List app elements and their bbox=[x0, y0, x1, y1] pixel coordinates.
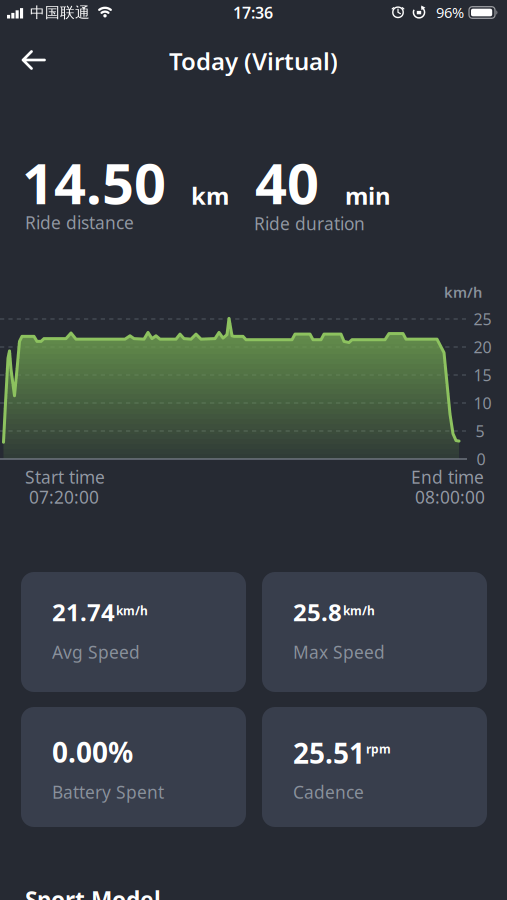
staticText: km bbox=[191, 180, 229, 211]
staticText: 14.50 bbox=[22, 145, 166, 220]
staticText: Avg Speed bbox=[52, 640, 140, 663]
staticText: 40 bbox=[255, 145, 319, 220]
staticText: 25.8 bbox=[293, 596, 342, 628]
staticText: km/h bbox=[343, 603, 375, 618]
staticText: rpm bbox=[366, 741, 391, 757]
staticText: Ride distance bbox=[25, 211, 134, 234]
staticText: Cadence bbox=[293, 780, 364, 803]
staticText: Max Speed bbox=[293, 640, 385, 663]
staticText: 25 bbox=[473, 308, 491, 330]
staticText: End time bbox=[411, 465, 484, 488]
staticText: 25.51 bbox=[293, 734, 365, 772]
button[interactable]: Back bbox=[11, 40, 56, 80]
staticText: Today (Virtual) bbox=[169, 45, 338, 77]
staticText: km/h bbox=[444, 282, 482, 302]
staticText: km/h bbox=[116, 603, 148, 618]
staticText: 0.00% bbox=[52, 733, 133, 771]
staticText: 15 bbox=[473, 364, 491, 386]
staticText: Battery Spent bbox=[52, 780, 164, 803]
staticText: 96% bbox=[436, 3, 464, 22]
staticText: Start time bbox=[25, 465, 105, 488]
staticText: 5 bbox=[475, 420, 484, 442]
staticText: 20 bbox=[473, 336, 491, 358]
staticText: 0 bbox=[476, 448, 485, 470]
staticText: 21.74 bbox=[52, 596, 115, 628]
staticText: 17:36 bbox=[233, 2, 273, 23]
staticText: 08:00:00 bbox=[415, 485, 485, 508]
staticText: Ride duration bbox=[254, 212, 365, 235]
staticText: Sport Model bbox=[25, 884, 161, 900]
staticText: 中国联通 bbox=[30, 3, 90, 21]
staticText: 07:20:00 bbox=[29, 485, 99, 508]
staticText: min bbox=[345, 180, 391, 211]
staticText: 10 bbox=[473, 392, 491, 414]
